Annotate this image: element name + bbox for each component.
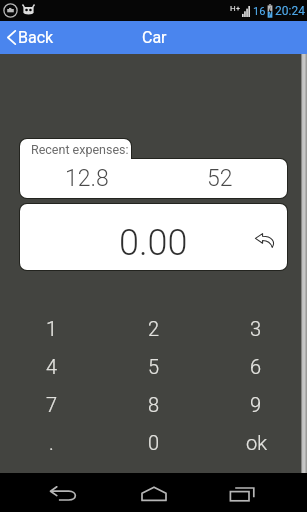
staticText: .: [49, 431, 54, 454]
button[interactable]: ok: [205, 423, 307, 461]
staticText: 2: [148, 317, 160, 340]
button[interactable]: 7: [0, 385, 103, 423]
staticText: 0: [148, 431, 160, 454]
staticText: 6: [250, 355, 262, 378]
button[interactable]: Home: [129, 474, 179, 512]
staticText: H+: [230, 4, 241, 13]
staticText: 5: [148, 355, 160, 378]
staticText: Recent expenses:: [31, 142, 129, 157]
button[interactable]: 4: [0, 347, 103, 385]
button[interactable]: 1: [0, 309, 103, 347]
button[interactable]: Backspace: [255, 230, 276, 251]
staticText: 4: [46, 355, 58, 378]
button[interactable]: Recents: [218, 474, 268, 512]
button[interactable]: Back: [39, 474, 89, 512]
staticText: ok: [246, 431, 267, 454]
button[interactable]: 9: [205, 385, 307, 423]
staticText: 9: [250, 393, 262, 416]
button[interactable]: 2: [103, 309, 205, 347]
staticText: 20:24: [275, 4, 305, 18]
staticText: 8: [148, 393, 160, 416]
staticText: Car: [142, 28, 167, 47]
button[interactable]: .: [0, 423, 103, 461]
staticText: 1: [46, 317, 58, 340]
staticText: 12.8: [65, 165, 109, 192]
staticText: 7: [46, 393, 58, 416]
button[interactable]: 3: [205, 309, 307, 347]
staticText: 52: [207, 165, 233, 192]
button[interactable]: 5: [103, 347, 205, 385]
staticText: 3: [250, 317, 262, 340]
staticText: Back: [18, 28, 54, 47]
button[interactable]: 6: [205, 347, 307, 385]
staticText: 16: [253, 5, 266, 18]
button[interactable]: 8: [103, 385, 205, 423]
button[interactable]: 0: [103, 423, 205, 461]
button[interactable]: Back: [0, 21, 64, 54]
staticText: 0.00: [119, 222, 188, 264]
